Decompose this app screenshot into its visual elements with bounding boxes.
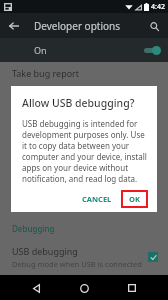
button[interactable]: Search bbox=[146, 18, 162, 34]
staticText: Take bug report bbox=[12, 67, 80, 79]
button[interactable]: Recent apps bbox=[120, 276, 144, 300]
button[interactable]: Home bbox=[72, 276, 96, 300]
button[interactable]: On bbox=[0, 38, 168, 62]
button[interactable]: USB debugging bbox=[12, 245, 158, 269]
staticText: USB debugging is intended for developmen… bbox=[22, 118, 148, 184]
staticText: OK bbox=[129, 194, 140, 204]
button[interactable]: Back bbox=[6, 18, 22, 34]
staticText: Allow USB debugging? bbox=[22, 96, 135, 110]
staticText: Debugging bbox=[12, 223, 55, 234]
staticText: 4:42 bbox=[151, 2, 165, 12]
staticText: Geeky stats about running processes bbox=[12, 200, 143, 210]
button[interactable]: OK bbox=[121, 190, 148, 208]
button[interactable]: CANCEL bbox=[77, 190, 117, 208]
staticText: Debug mode when USB is connected bbox=[12, 259, 142, 269]
staticText: Developer options bbox=[34, 19, 121, 33]
button[interactable]: Back bbox=[24, 276, 48, 300]
staticText: On bbox=[34, 44, 47, 56]
staticText: USB debugging bbox=[12, 245, 78, 257]
staticText: CANCEL bbox=[82, 194, 112, 204]
